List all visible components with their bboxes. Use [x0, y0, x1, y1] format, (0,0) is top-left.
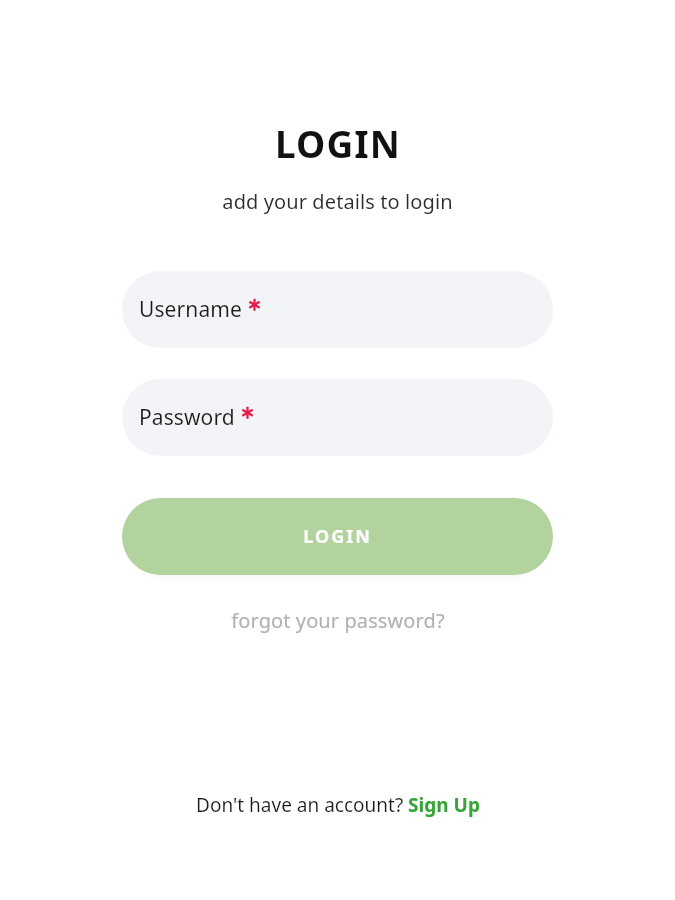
button[interactable]: Password [122, 379, 553, 456]
staticText: Password [139, 403, 235, 432]
button[interactable]: forgot your password? [221, 603, 455, 638]
button[interactable]: LOGIN [122, 498, 553, 575]
button[interactable]: Username [122, 271, 553, 348]
staticText: forgot your password? [231, 607, 445, 634]
staticText: Don't have an account? Sign Up [196, 792, 480, 818]
staticText: Username [139, 295, 242, 324]
button[interactable]: Don't have an account? Sign Up [186, 788, 490, 822]
staticText: LOGIN [303, 524, 372, 549]
staticText: add your details to login [222, 188, 453, 215]
staticText: LOGIN [275, 118, 401, 168]
